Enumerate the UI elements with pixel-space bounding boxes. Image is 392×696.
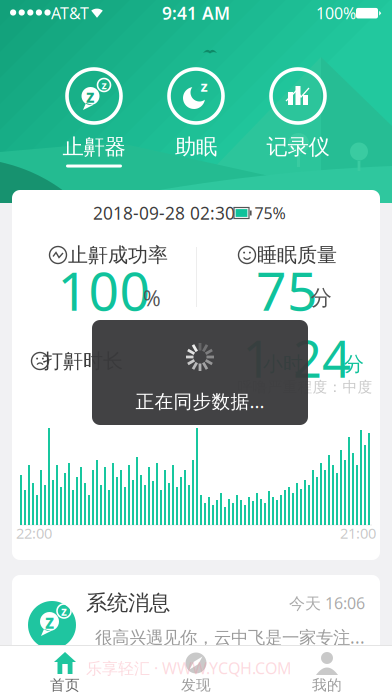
staticText: 小时 bbox=[263, 352, 303, 376]
button[interactable]: z bbox=[144, 40, 248, 172]
staticText: 今天 16:06 bbox=[289, 592, 365, 614]
staticText: 呼噜严重程度：中度 bbox=[237, 378, 372, 396]
staticText: 100 bbox=[57, 255, 150, 325]
staticText: 分 bbox=[344, 352, 364, 376]
staticText: 系统消息 bbox=[86, 590, 170, 616]
staticText: 止鼾成功率 bbox=[68, 243, 168, 267]
staticText: 助眠 bbox=[175, 134, 217, 160]
staticText: z bbox=[61, 603, 67, 619]
staticText: 75% bbox=[254, 202, 285, 224]
staticText: 首页 bbox=[50, 676, 80, 694]
button[interactable]: z bbox=[12, 575, 380, 657]
staticText: 发现 bbox=[181, 676, 211, 694]
staticText: 1 bbox=[242, 324, 271, 392]
staticText: 9:41 AM bbox=[162, 1, 230, 24]
staticText: 2018-09-28 02:30 bbox=[93, 201, 235, 224]
staticText: 止鼾器 bbox=[62, 134, 125, 160]
staticText: 24 bbox=[293, 324, 351, 392]
staticText: 正在同步数据... bbox=[135, 389, 264, 413]
button[interactable]: 首页 bbox=[0, 645, 130, 696]
staticText: 乐享轻汇 · WWW.YCQH.COM bbox=[86, 657, 292, 679]
staticText: z bbox=[86, 84, 95, 107]
staticText: 打鼾时长 bbox=[43, 349, 123, 373]
button[interactable]: z bbox=[42, 40, 146, 172]
staticText: 21:00 bbox=[340, 523, 376, 543]
staticText: z bbox=[45, 609, 54, 634]
staticText: z bbox=[101, 78, 106, 92]
staticText: 记录仪 bbox=[266, 134, 329, 160]
staticText: 分 bbox=[310, 285, 331, 311]
staticText: 100% bbox=[316, 2, 356, 24]
staticText: AT&T bbox=[51, 2, 89, 24]
button[interactable]: 我的 bbox=[262, 645, 392, 696]
staticText: 75 bbox=[256, 255, 318, 325]
staticText: 很高兴遇见你，云中飞是一家专注... bbox=[95, 625, 365, 648]
button[interactable]: 发现 bbox=[131, 645, 261, 696]
button[interactable]: 记录仪 bbox=[246, 40, 350, 172]
staticText: 22:00 bbox=[16, 523, 52, 543]
staticText: 我的 bbox=[312, 676, 342, 694]
staticText: 睡眠质量 bbox=[257, 243, 337, 267]
staticText: % bbox=[143, 284, 161, 312]
staticText: z bbox=[200, 76, 207, 96]
